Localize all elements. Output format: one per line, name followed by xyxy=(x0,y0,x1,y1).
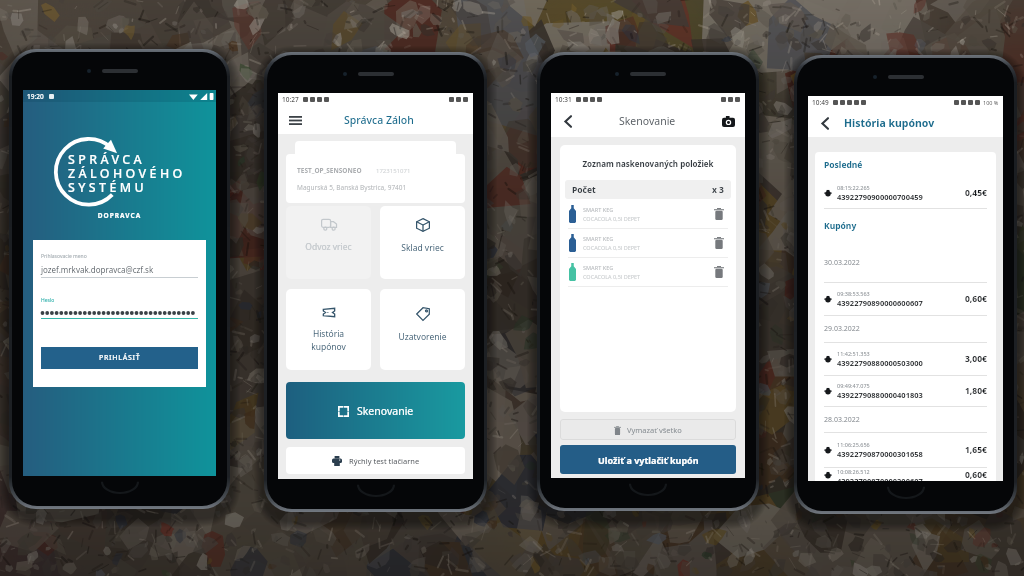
staticText: SMART KEG xyxy=(583,264,614,271)
staticText: Magurská 5, Banská Bystrica, 97401 xyxy=(297,183,407,192)
button[interactable]: PRIHLÁSIŤ xyxy=(41,347,198,369)
button[interactable]: Rýchly test tlačiarne xyxy=(286,447,465,474)
staticText: ZÁLOHOVÉHO xyxy=(68,165,186,179)
staticText: 3,00€ xyxy=(965,353,987,365)
staticText: Skenovanie xyxy=(357,404,414,418)
staticText: Vymazať všetko xyxy=(627,425,682,435)
staticText: 43922790880000401803 xyxy=(837,390,923,400)
button[interactable]: SMART KEG xyxy=(569,258,727,286)
button[interactable]: 09:49:47.075 xyxy=(824,376,987,406)
staticText: 08:15:22.265 xyxy=(837,184,870,191)
staticText: 43922790900000700459 xyxy=(837,192,923,202)
button[interactable]: Sklad vriec xyxy=(380,206,465,279)
button[interactable]: Camera xyxy=(719,112,737,130)
button[interactable]: Delete xyxy=(711,264,727,280)
staticText: Heslo xyxy=(41,297,55,304)
staticText: Posledné xyxy=(824,159,863,171)
staticText: 0,45€ xyxy=(965,187,987,199)
staticText: Skenovanie xyxy=(619,114,676,128)
staticText: 10:49 xyxy=(812,98,829,107)
staticText: 10:27 xyxy=(282,95,299,104)
staticText: Sklad vriec xyxy=(380,242,465,254)
button[interactable]: SMART KEG xyxy=(569,229,727,257)
button[interactable]: Back xyxy=(816,114,834,132)
staticText: 29.03.2022 xyxy=(824,324,860,334)
staticText: Prihlasovacie meno xyxy=(41,253,87,260)
staticText: 30.03.2022 xyxy=(824,258,860,268)
staticText: SMART KEG xyxy=(583,206,614,213)
staticText: COCACOLA 0,5l DEPET xyxy=(583,215,641,222)
staticText: 1723151071 xyxy=(376,167,411,175)
staticText: Uzatvorenie xyxy=(380,331,465,343)
button[interactable]: 08:15:22.265 xyxy=(824,178,987,208)
button[interactable]: Back xyxy=(559,112,577,130)
staticText: 10:31 xyxy=(555,95,572,104)
staticText: 28.03.2022 xyxy=(824,415,860,425)
staticText: TEST_OP_SENSONEO xyxy=(297,166,362,175)
button[interactable]: História kupónov xyxy=(286,289,371,370)
staticText: 100 % xyxy=(983,99,999,106)
button[interactable]: Vymazať všetko xyxy=(560,419,736,440)
staticText: 43922790880000503000 xyxy=(837,358,923,368)
staticText: Uložiť a vytlačiť kupón xyxy=(598,454,699,466)
staticText: x 3 xyxy=(712,184,724,196)
staticText: 1,65€ xyxy=(965,444,987,456)
button[interactable]: Uložiť a vytlačiť kupón xyxy=(560,445,736,474)
staticText: 11:06:25.656 xyxy=(837,441,870,448)
staticText: COCACOLA 0,5l DEPET xyxy=(583,244,641,251)
staticText: Kupóny xyxy=(824,220,857,232)
staticText: SMART KEG xyxy=(583,235,614,242)
staticText: 09:49:47.075 xyxy=(837,382,870,389)
staticText: 09:38:53.563 xyxy=(837,290,870,297)
staticText: 19:20 xyxy=(27,92,44,101)
button[interactable]: 09:38:53.563 xyxy=(824,283,987,315)
button[interactable]: SMART KEG xyxy=(569,200,727,228)
button[interactable]: Delete xyxy=(711,206,727,222)
staticText: SPRÁVCA xyxy=(68,151,146,165)
staticText: Zoznam naskenovaných položiek xyxy=(560,158,736,169)
staticText: jozef.mrkvak.dopravca@czf.sk xyxy=(41,264,154,275)
staticText: Počet xyxy=(572,184,596,196)
button[interactable]: Skenovanie xyxy=(286,382,465,439)
staticText: Odvoz vriec xyxy=(286,241,371,253)
staticText: 1,80€ xyxy=(965,385,987,397)
staticText: 43922790870000200607 xyxy=(837,476,923,481)
button[interactable]: 10:08:26.512 xyxy=(824,468,987,481)
button[interactable]: 11:42:51.353 xyxy=(824,343,987,375)
staticText: 43922790890000600607 xyxy=(837,298,923,308)
staticText: 43922790870000301658 xyxy=(837,449,923,459)
button[interactable]: Menu xyxy=(286,111,304,129)
staticText: 0,60€ xyxy=(965,293,987,305)
staticText: SYSTÉMU xyxy=(68,179,148,193)
staticText: 11:42:51.353 xyxy=(837,350,870,357)
staticText: 0,60€ xyxy=(965,469,987,481)
staticText: COCACOLA 0,5l DEPET xyxy=(583,273,641,280)
staticText: História kupónov xyxy=(844,116,935,130)
staticText: Rýchly test tlačiarne xyxy=(349,456,420,466)
button[interactable]: Uzatvorenie xyxy=(380,289,465,370)
button[interactable]: Odvoz vriec xyxy=(286,206,371,279)
staticText: Správca Záloh xyxy=(344,113,414,127)
staticText: 10:08:26.512 xyxy=(837,468,870,475)
staticText: DOPRAVCA xyxy=(23,211,216,220)
staticText: História kupónov xyxy=(286,328,371,353)
button[interactable]: Delete xyxy=(711,235,727,251)
staticText: PRIHLÁSIŤ xyxy=(99,353,141,363)
button[interactable]: 11:06:25.656 xyxy=(824,433,987,467)
